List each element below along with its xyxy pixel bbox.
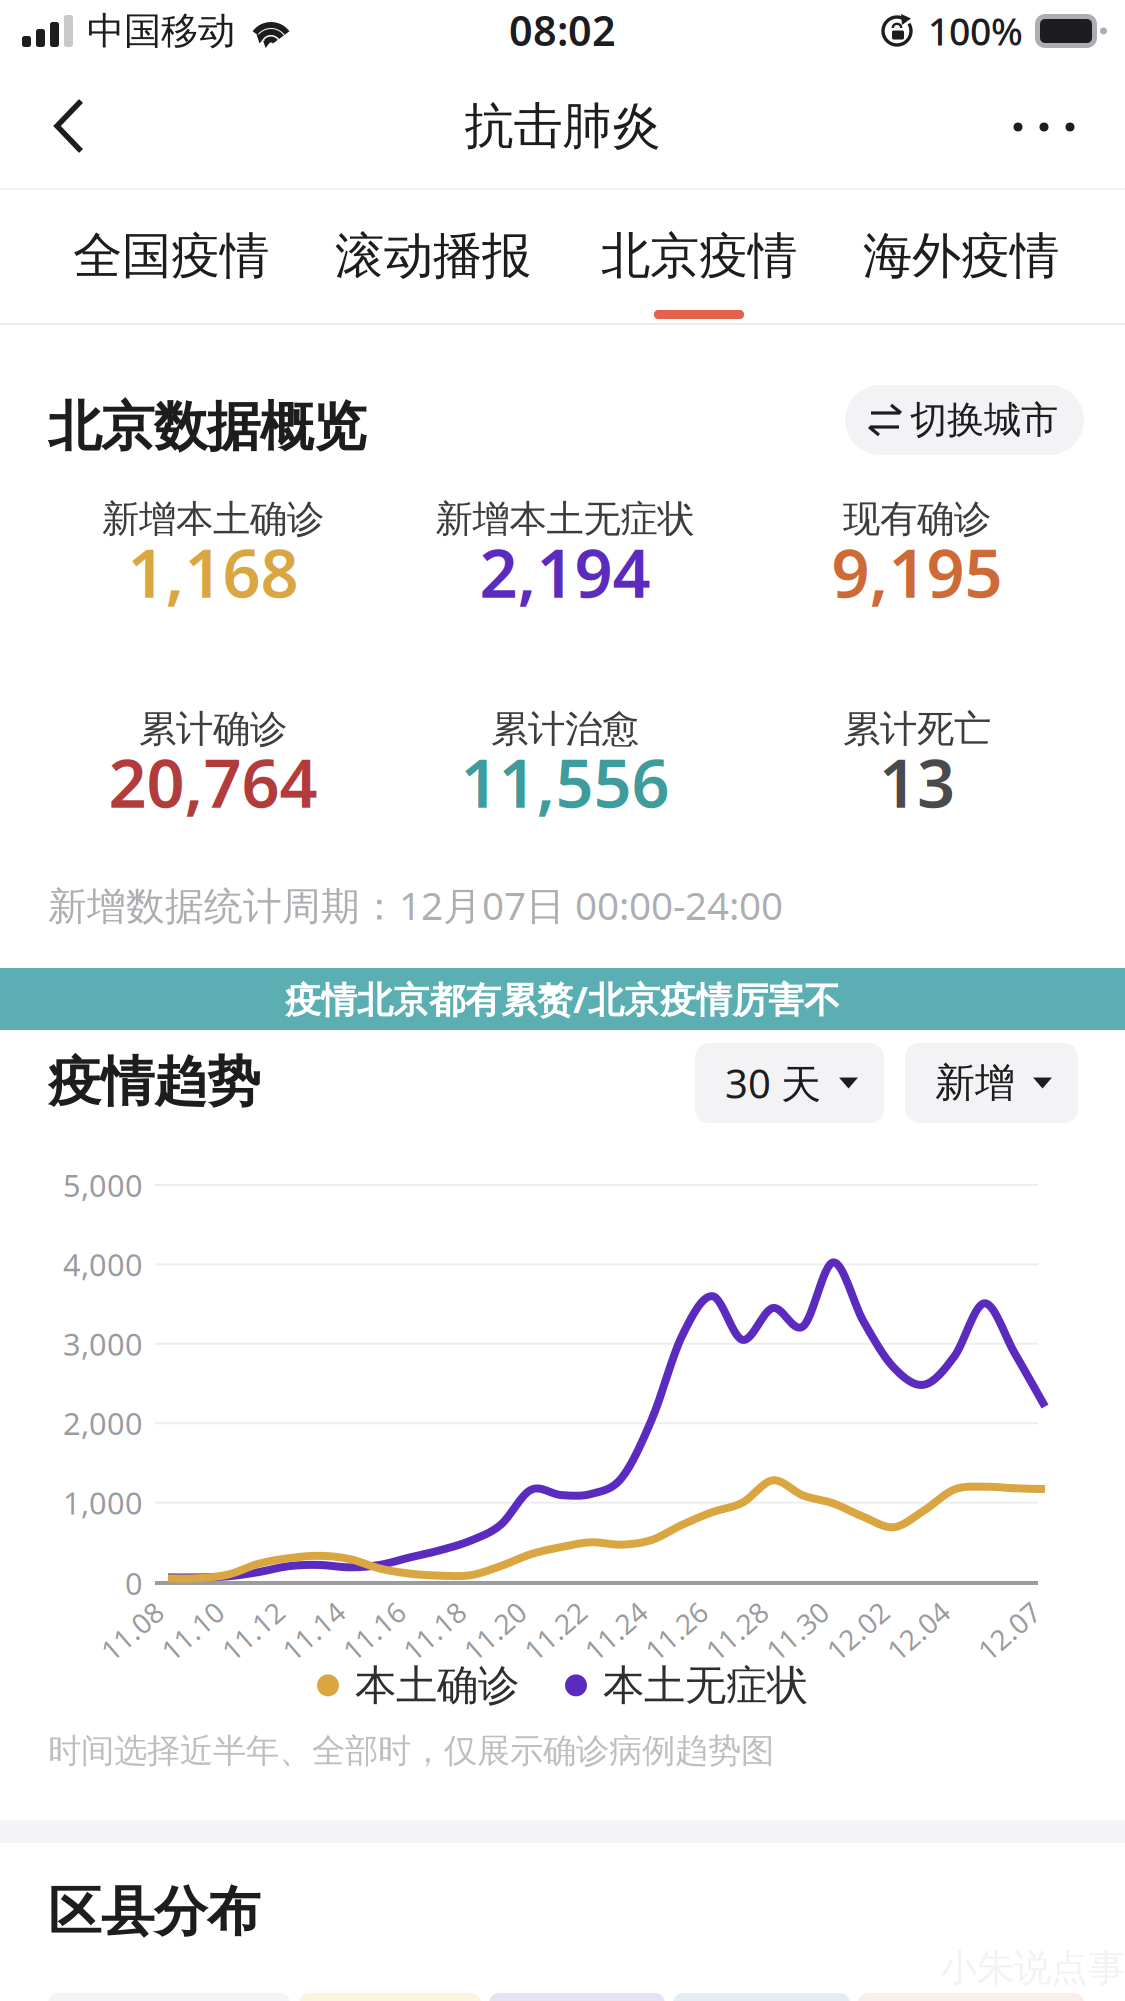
staticText: 2,000 — [63, 1403, 143, 1443]
staticText: 疫情趋势 — [48, 1049, 260, 1115]
staticText: 13 — [879, 738, 955, 826]
button[interactable]: 切换城市 — [845, 385, 1084, 455]
staticText: 新增 — [935, 1058, 1015, 1107]
staticText: 11.20 — [459, 1612, 531, 1650]
staticText: 新增本土确诊 — [102, 496, 324, 542]
button[interactable]: 北京疫情 — [584, 222, 814, 331]
staticText: 20,764 — [108, 738, 317, 826]
staticText: 11.16 — [338, 1612, 410, 1650]
staticText: 11,556 — [460, 738, 669, 826]
staticText: 1,168 — [127, 528, 298, 616]
staticText: 11.22 — [519, 1612, 591, 1650]
staticText: 累计死亡 — [843, 706, 991, 752]
staticText: 疫情北京都有累赘/北京疫情厉害不 — [285, 975, 840, 1023]
button[interactable]: 全国疫情 — [56, 222, 286, 331]
staticText: 12.04 — [882, 1612, 954, 1650]
staticText: 11.08 — [96, 1612, 168, 1650]
button[interactable]: 滚动播报 — [318, 222, 548, 331]
staticText: 切换城市 — [910, 397, 1058, 443]
staticText: 本土确诊 — [355, 1660, 519, 1711]
staticText: 11.26 — [640, 1612, 712, 1650]
staticText: 北京数据概览 — [48, 394, 366, 460]
button[interactable]: More — [1000, 96, 1088, 158]
staticText: 2,194 — [479, 528, 650, 616]
staticText: 5,000 — [63, 1165, 143, 1205]
button[interactable]: Back — [30, 92, 108, 160]
staticText: 滚动播报 — [335, 226, 531, 286]
staticText: 北京疫情 — [601, 226, 797, 286]
staticText: 小朱说点事 — [940, 1945, 1125, 1991]
staticText: 9,195 — [831, 528, 1002, 616]
staticText: 新增本土无症状 — [435, 496, 694, 542]
staticText: 12.07 — [973, 1612, 1045, 1650]
staticText: 11.24 — [580, 1612, 652, 1650]
staticText: 1,000 — [63, 1482, 143, 1523]
staticText: 现有确诊 — [843, 496, 991, 542]
staticText: 12.02 — [822, 1612, 894, 1650]
staticText: 11.12 — [217, 1612, 289, 1650]
staticText: 累计确诊 — [139, 706, 287, 752]
staticText: 08:02 — [509, 3, 616, 57]
staticText: 11.18 — [398, 1612, 470, 1650]
button[interactable]: 30 天 — [695, 1043, 884, 1123]
staticText: 11.14 — [277, 1612, 349, 1650]
staticText: 海外疫情 — [863, 226, 1059, 286]
staticText: 11.30 — [761, 1612, 833, 1650]
staticText: 累计治愈 — [491, 706, 639, 752]
staticText: 3,000 — [63, 1323, 143, 1364]
staticText: 中国移动 — [87, 8, 235, 54]
staticText: 全国疫情 — [73, 226, 269, 286]
staticText: 新增数据统计周期：12月07日 00:00-24:00 — [48, 879, 783, 931]
staticText: 时间选择近半年、全部时，仅展示确诊病例趋势图 — [48, 1730, 774, 1771]
staticText: 100% — [928, 6, 1023, 56]
staticText: 本土无症状 — [603, 1660, 808, 1711]
staticText: 30 天 — [725, 1056, 821, 1109]
staticText: 11.28 — [701, 1612, 773, 1650]
staticText: 区县分布 — [48, 1879, 260, 1945]
staticText: 0 — [125, 1563, 143, 1603]
button[interactable]: 新增 — [905, 1043, 1078, 1123]
staticText: 抗击肺炎 — [464, 96, 660, 156]
staticText: 11.10 — [156, 1612, 228, 1650]
staticText: 4,000 — [63, 1244, 143, 1285]
button[interactable]: 海外疫情 — [846, 222, 1076, 331]
